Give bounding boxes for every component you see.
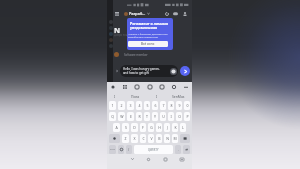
- staticText: Q: [111, 114, 114, 119]
- staticText: S: [125, 125, 127, 130]
- staticText: 1: [111, 103, 114, 108]
- button[interactable]: Keyboard tool 4: [159, 84, 165, 90]
- button[interactable]: X: [131, 134, 138, 143]
- button[interactable]: S: [122, 123, 129, 132]
- button[interactable]: B: [156, 134, 162, 143]
- button[interactable]: Всё ясно: [128, 41, 168, 47]
- button[interactable]: Emoji: [170, 68, 177, 75]
- button[interactable]: Threads: [163, 10, 170, 17]
- staticText: Разраб...: [129, 11, 146, 16]
- button[interactable]: [109, 38, 113, 42]
- staticText: N: [166, 136, 169, 141]
- staticText: Пока: [131, 94, 140, 99]
- button[interactable]: Slash: [126, 145, 132, 154]
- staticText: 2: [120, 103, 123, 108]
- staticText: A: [115, 125, 118, 130]
- button[interactable]: Members: [181, 10, 188, 17]
- button[interactable]: Enter: [183, 145, 190, 154]
- button[interactable]: F: [140, 123, 146, 132]
- button[interactable]: Keyboard tool 6: [183, 84, 189, 90]
- button[interactable]: SenMas: [165, 93, 192, 100]
- button[interactable]: I: [168, 112, 174, 121]
- button[interactable]: [109, 26, 113, 30]
- button[interactable]: 0: [184, 101, 190, 110]
- staticText: SenMas: [172, 94, 185, 99]
- button[interactable]: Q: [109, 112, 116, 121]
- button[interactable]: Hide keyboard: [177, 158, 186, 163]
- button[interactable]: 6: [152, 101, 158, 110]
- button[interactable]: G: [148, 123, 154, 132]
- button[interactable]: Keyboard tool 3: [147, 84, 153, 90]
- button[interactable]: Backspace: [180, 134, 190, 143]
- button[interactable]: Keyboard tool 2: [134, 84, 140, 90]
- button[interactable]: Emoji: [118, 145, 124, 154]
- button[interactable]: [109, 20, 113, 24]
- button[interactable]: [109, 32, 113, 36]
- button[interactable]: 4: [136, 101, 142, 110]
- button[interactable]: QWERTY: [134, 145, 173, 154]
- button[interactable]: K: [172, 123, 178, 132]
- staticText: Добро пожаловать: [114, 33, 138, 37]
- button[interactable]: Menu: [113, 10, 120, 17]
- button[interactable]: Calls: [172, 10, 179, 17]
- button[interactable]: 7: [160, 101, 166, 110]
- button[interactable]: Keyboard tool 1: [122, 84, 128, 90]
- staticText: Всё ясно: [141, 42, 155, 46]
- button[interactable]: Recents: [161, 158, 170, 163]
- button[interactable]: U: [160, 112, 166, 121]
- button[interactable]: N: [164, 134, 170, 143]
- button[interactable]: 1: [109, 101, 116, 110]
- button[interactable]: 8: [168, 101, 174, 110]
- staticText: QWERTY: [148, 148, 159, 152]
- button[interactable]: Keyboard tool 0: [110, 84, 116, 90]
- staticText: U: [162, 114, 165, 119]
- button[interactable]: O: [176, 112, 182, 121]
- button[interactable]: I: [107, 93, 122, 100]
- staticText: Z: [124, 136, 127, 141]
- button[interactable]: Symbols: [109, 145, 116, 154]
- button[interactable]: Z: [122, 134, 129, 143]
- button[interactable]: W: [118, 112, 125, 121]
- button[interactable]: Home: [144, 158, 153, 163]
- staticText: ?123: [110, 148, 115, 151]
- button[interactable]: P: [184, 112, 190, 121]
- button[interactable]: Y: [152, 112, 158, 121]
- staticText: I: [170, 114, 172, 119]
- button[interactable]: H: [156, 123, 162, 132]
- staticText: P: [186, 114, 189, 119]
- button[interactable]: Пока: [122, 93, 149, 100]
- button[interactable]: Back: [128, 158, 137, 163]
- staticText: 7: [162, 103, 165, 108]
- button[interactable]: Shift: [109, 134, 120, 143]
- button[interactable]: [109, 44, 113, 48]
- staticText: V: [150, 136, 153, 141]
- button[interactable]: D: [131, 123, 138, 132]
- button[interactable]: Attach: [114, 68, 120, 74]
- staticText: Hello, I was hungry games. and how to ge…: [123, 67, 170, 75]
- staticText: M: [173, 136, 177, 141]
- button[interactable]: Hello, I was hungry games. and how to ge…: [120, 65, 178, 77]
- button[interactable]: J: [164, 123, 170, 132]
- button[interactable]: R: [136, 112, 142, 121]
- button[interactable]: E: [127, 112, 134, 121]
- button[interactable]: 3: [127, 101, 134, 110]
- button[interactable]: 5: [144, 101, 150, 110]
- button[interactable]: Send: [180, 66, 190, 76]
- staticText: X: [133, 136, 136, 141]
- button[interactable]: V: [148, 134, 154, 143]
- staticText: D: [133, 125, 136, 130]
- staticText: 9: [178, 103, 181, 108]
- staticText: 4: [138, 103, 141, 108]
- button[interactable]: C: [140, 134, 146, 143]
- button[interactable]: M: [172, 134, 178, 143]
- staticText: G: [150, 125, 153, 130]
- staticText: 3: [129, 103, 132, 108]
- button[interactable]: 9: [176, 101, 182, 110]
- button[interactable]: I: [149, 93, 165, 100]
- button[interactable]: Period: [175, 145, 181, 154]
- button[interactable]: Keyboard tool 5: [171, 84, 177, 90]
- button[interactable]: T: [144, 112, 150, 121]
- button[interactable]: L: [180, 123, 186, 132]
- button[interactable]: 2: [118, 101, 125, 110]
- button[interactable]: A: [113, 123, 120, 132]
